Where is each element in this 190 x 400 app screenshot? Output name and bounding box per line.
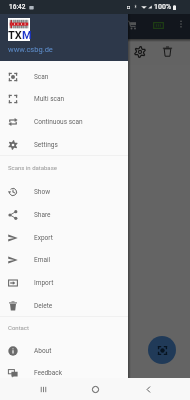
staticText: Share — [34, 211, 51, 219]
button[interactable]: More options — [172, 15, 189, 32]
staticText: Export — [34, 234, 53, 242]
staticText: Continuous scan — [34, 118, 83, 126]
button[interactable]: About — [0, 339, 128, 362]
staticText: Email — [34, 256, 51, 264]
button[interactable]: Import — [0, 271, 128, 294]
staticText: Multi scan — [34, 95, 65, 103]
staticText: Show — [34, 188, 51, 196]
staticText: Scans in database — [8, 164, 57, 171]
button[interactable]: Show — [0, 180, 128, 203]
button[interactable]: Multi scan — [0, 87, 128, 110]
staticText: Scan — [34, 73, 49, 81]
staticText: 100% — [154, 3, 172, 11]
staticText: TX — [8, 29, 22, 42]
button[interactable]: Continuous scan — [0, 110, 128, 133]
staticText: Delete — [34, 302, 53, 310]
button[interactable]: Settings — [129, 41, 150, 62]
staticText: Contact — [8, 324, 29, 331]
button[interactable]: Scan — [0, 65, 128, 88]
button[interactable]: Recent apps — [33, 379, 53, 399]
button[interactable]: Scan — [148, 336, 176, 364]
button[interactable]: Delete — [0, 294, 128, 317]
staticText: 16:42 — [9, 3, 26, 11]
button[interactable]: Scanner connected — [148, 15, 168, 35]
button[interactable]: www.csbg.de — [8, 45, 53, 54]
button[interactable]: Email — [0, 248, 128, 271]
staticText: Import — [34, 279, 54, 287]
button[interactable]: Feedback — [0, 361, 128, 384]
staticText: M — [22, 29, 30, 42]
button[interactable]: Share — [0, 203, 128, 226]
button[interactable]: Cart — [122, 15, 142, 35]
button[interactable]: Delete all — [157, 41, 178, 62]
staticText: Feedback — [34, 369, 62, 377]
button[interactable]: Settings — [0, 133, 128, 156]
button[interactable]: Export — [0, 226, 128, 249]
button[interactable]: Back — [138, 379, 158, 399]
staticText: About — [34, 347, 52, 355]
button[interactable]: Home — [85, 379, 105, 399]
staticText: Settings — [34, 141, 58, 149]
